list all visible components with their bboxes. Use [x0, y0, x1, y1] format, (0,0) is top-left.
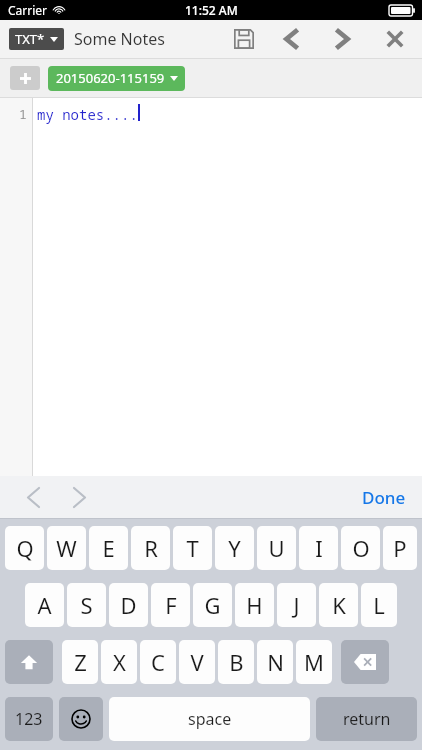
button[interactable]: TXT* — [9, 28, 64, 50]
button[interactable]: U — [257, 526, 296, 570]
button[interactable]: N — [257, 640, 293, 684]
staticText: T — [186, 533, 199, 563]
button[interactable]: W — [47, 526, 86, 570]
staticText: TXT* — [15, 30, 45, 48]
staticText: F — [165, 590, 177, 620]
button[interactable]: Y — [215, 526, 254, 570]
staticText: K — [332, 590, 346, 620]
button[interactable]: Q — [5, 526, 44, 570]
button[interactable]: 20150620-115159 — [48, 66, 185, 91]
staticText: return — [343, 708, 391, 730]
staticText: Some Notes — [74, 28, 165, 50]
button[interactable]: P — [383, 526, 417, 570]
staticText: R — [144, 533, 158, 563]
staticText: W — [56, 533, 77, 563]
button[interactable]: K — [319, 583, 358, 627]
button[interactable]: M — [296, 640, 332, 684]
button[interactable]: Done — [346, 476, 422, 518]
staticText: 20150620-115159 — [56, 69, 165, 87]
staticText: B — [229, 647, 244, 677]
staticText: my notes.... — [37, 105, 138, 124]
button[interactable]: Shift — [5, 640, 53, 684]
staticText: A — [37, 590, 52, 620]
button[interactable]: O — [341, 526, 380, 570]
staticText: D — [120, 590, 137, 620]
button[interactable]: V — [179, 640, 215, 684]
staticText: M — [304, 647, 324, 677]
button[interactable]: H — [235, 583, 274, 627]
staticText: J — [293, 590, 300, 620]
button[interactable]: space — [109, 697, 310, 741]
button[interactable]: B — [218, 640, 254, 684]
button[interactable]: X — [101, 640, 137, 684]
staticText: V — [190, 647, 204, 677]
staticText: G — [204, 590, 221, 620]
staticText: U — [268, 533, 285, 563]
button[interactable]: G — [193, 583, 232, 627]
staticText: 123 — [15, 708, 43, 730]
staticText: X — [113, 647, 126, 677]
button[interactable]: A — [25, 583, 64, 627]
button[interactable]: J — [277, 583, 316, 627]
button[interactable]: Previous field — [16, 480, 50, 514]
staticText: L — [373, 590, 385, 620]
button[interactable]: Next field — [62, 480, 96, 514]
staticText: Z — [74, 647, 87, 677]
button[interactable]: R — [131, 526, 170, 570]
button[interactable]: Save — [222, 20, 266, 58]
button[interactable]: Backspace — [341, 640, 389, 684]
staticText: Carrier — [8, 2, 48, 18]
staticText: P — [393, 533, 407, 563]
staticText: I — [315, 533, 323, 563]
staticText: C — [151, 647, 165, 677]
button[interactable]: Z — [62, 640, 98, 684]
staticText: Y — [228, 533, 241, 563]
staticText: S — [80, 590, 93, 620]
staticText: E — [102, 533, 115, 563]
button[interactable]: C — [140, 640, 176, 684]
staticText: Q — [16, 533, 34, 563]
staticText: space — [188, 708, 232, 730]
button[interactable]: return — [316, 697, 417, 741]
button[interactable]: F — [151, 583, 190, 627]
button[interactable]: Next — [324, 20, 360, 58]
staticText: 1 — [19, 105, 27, 123]
button[interactable]: D — [109, 583, 148, 627]
button[interactable]: T — [173, 526, 212, 570]
button[interactable]: S — [67, 583, 106, 627]
button[interactable]: Emoji — [59, 697, 103, 741]
staticText: O — [352, 533, 370, 563]
button[interactable]: Add tag — [10, 66, 40, 90]
button[interactable]: E — [89, 526, 128, 570]
staticText: H — [246, 590, 263, 620]
staticText: N — [267, 647, 284, 677]
button[interactable]: Previous — [274, 20, 310, 58]
button[interactable]: 123 — [5, 697, 53, 741]
button[interactable]: L — [361, 583, 397, 627]
button[interactable]: Close — [374, 20, 416, 58]
staticText: Done — [362, 486, 406, 509]
staticText: 11:52 AM — [185, 2, 238, 18]
button[interactable]: I — [299, 526, 338, 570]
